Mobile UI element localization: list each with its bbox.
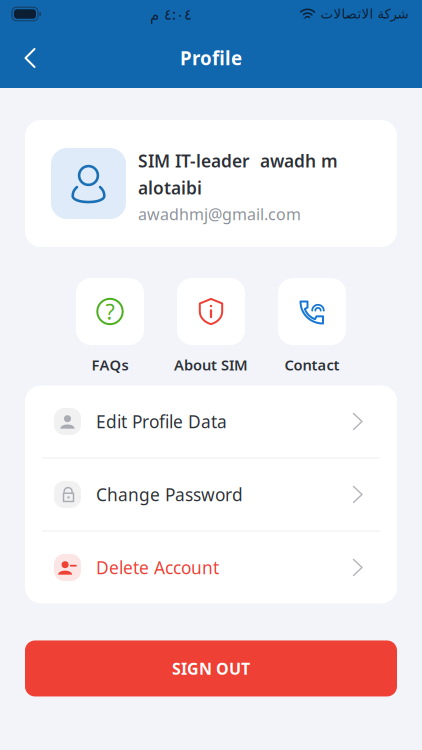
staticText: شركة الاتصالات: [320, 6, 408, 21]
button[interactable]: Edit Profile Data: [25, 385, 397, 457]
button[interactable]: Delete Account: [25, 531, 397, 603]
button[interactable]: Back: [0, 35, 52, 81]
staticText: FAQs: [91, 355, 128, 374]
staticText: Profile: [180, 46, 242, 70]
staticText: SIGN OUT: [172, 658, 250, 679]
staticText: Contact: [284, 355, 339, 374]
staticText: Delete Account: [96, 556, 219, 579]
button[interactable]: ?: [76, 278, 144, 374]
staticText: Change Password: [96, 483, 243, 506]
staticText: About SIM: [174, 355, 248, 374]
staticText: awadhmj@gmail.com: [138, 203, 301, 225]
button[interactable]: Contact: [278, 278, 346, 374]
staticText: ٤:٠٤ م: [149, 4, 191, 24]
button[interactable]: About SIM: [177, 278, 245, 374]
staticText: Edit Profile Data: [96, 410, 227, 433]
button[interactable]: SIGN OUT: [25, 640, 397, 696]
staticText: ?: [105, 297, 114, 326]
button[interactable]: Change Password: [25, 458, 397, 530]
staticText: SIM IT-leader awadh m alotaibi: [138, 149, 338, 199]
